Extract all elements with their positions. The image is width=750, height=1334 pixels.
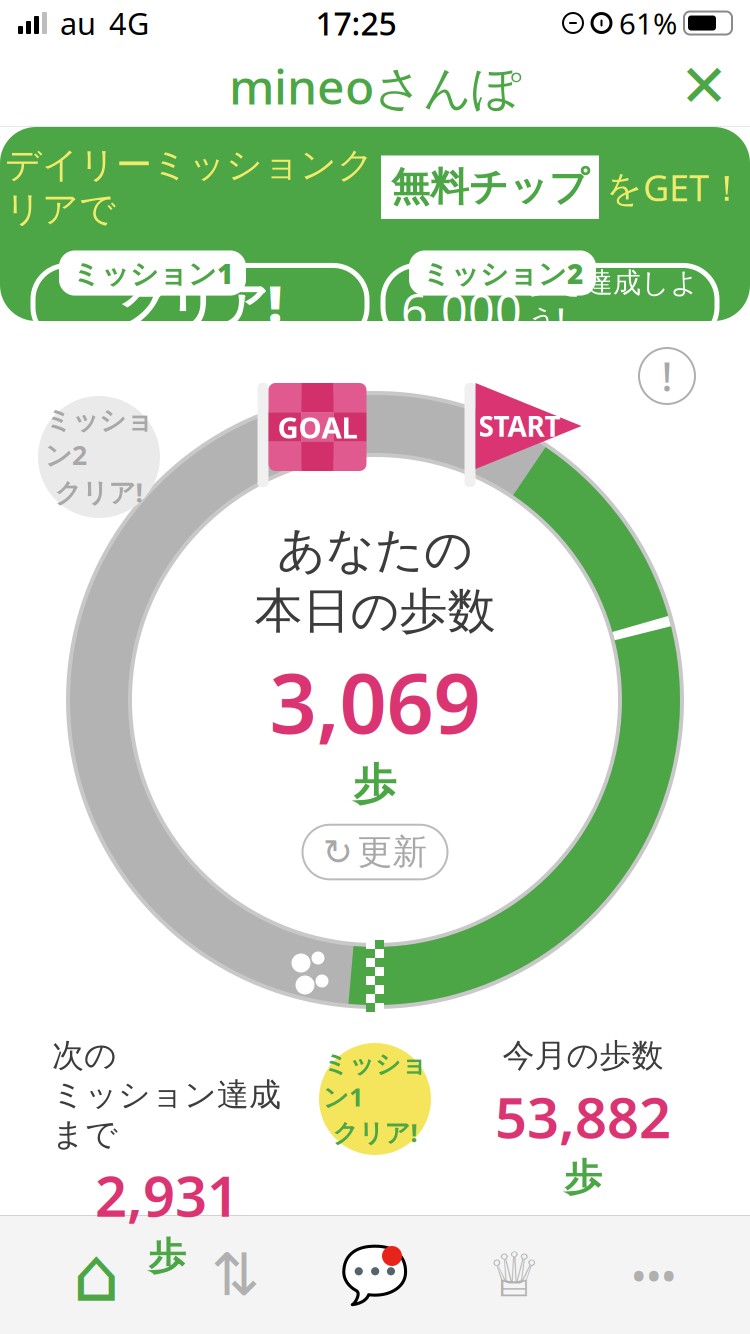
staticText: ✕ [679,53,728,119]
staticText: ⌂ [73,1233,120,1317]
staticText: 3,069 [269,647,480,756]
staticText: あなたの [277,521,473,580]
staticText: GOAL [277,407,357,446]
staticText: 歩 [353,758,396,811]
staticText: 2,931 [95,1158,239,1232]
staticText: ミッション達成まで [52,1075,281,1154]
button[interactable]: クリア! [33,265,367,341]
staticText: 次の [52,1036,117,1075]
staticText: START [478,407,560,445]
staticText: ミッション2 [45,404,153,472]
button[interactable]: チャット [332,1242,418,1308]
staticText: クリア! [54,474,143,510]
staticText: ↻ [322,832,352,872]
staticText: 53,882 [495,1079,671,1154]
staticText: ♕ [487,1240,542,1310]
staticText: 6,000 [401,279,522,341]
staticText: au [60,3,96,43]
staticText: 無料チップ [391,163,589,211]
staticText: 4G [109,3,149,43]
staticText: ミッション1 [323,1049,427,1114]
button[interactable]: ホーム [53,1242,139,1308]
button[interactable]: その他 [611,1242,697,1308]
button[interactable]: データ [193,1242,279,1308]
staticText: 17:25 [315,2,396,44]
button[interactable]: ↻ [302,825,447,879]
staticText: デイリーミッションクリアで [5,143,374,231]
staticText: mineoさんぽ [229,54,521,118]
staticText: ••• [631,1248,676,1301]
staticText: 💬 [340,1243,410,1307]
staticText: 歩を達成しよう! [528,266,699,337]
button[interactable]: 説明 [639,348,695,404]
staticText: クリア! [118,271,282,336]
button[interactable]: 閉じる [672,54,736,118]
staticText: 61% [619,3,677,42]
staticText: ! [661,349,672,402]
staticText: をGET！ [606,163,745,211]
staticText: 更新 [357,831,427,873]
button[interactable]: ランキング [471,1242,557,1308]
button[interactable]: 6,000 [383,265,717,341]
staticText: 歩 [148,1233,185,1279]
staticText: クリア! [332,1116,417,1149]
button[interactable]: 無料チップ [381,155,599,219]
staticText: 今月の歩数 [502,1036,663,1075]
staticText: ⇅ [211,1242,260,1308]
staticText: 歩 [564,1155,601,1201]
staticText: ミッション1 [72,254,233,292]
staticText: 本日の歩数 [254,582,495,641]
staticText: ミッション2 [422,254,583,292]
